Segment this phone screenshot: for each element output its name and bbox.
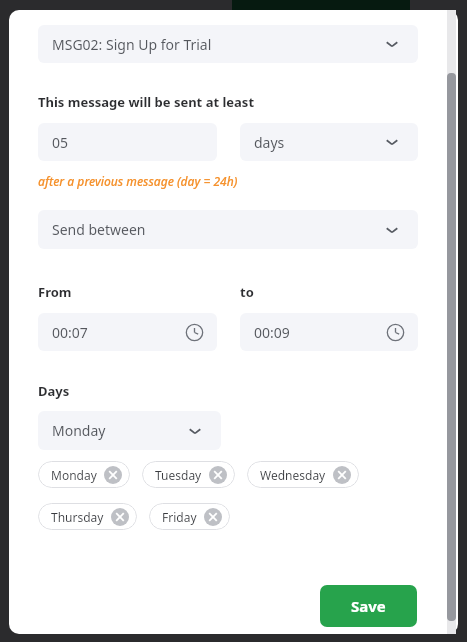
- button[interactable]: Tuesday: [142, 461, 235, 488]
- button[interactable]: Save: [320, 585, 417, 627]
- button[interactable]: Send between: [38, 210, 418, 249]
- staticText: 05: [52, 133, 69, 152]
- button[interactable]: Monday: [38, 411, 221, 450]
- button[interactable]: days: [240, 123, 418, 161]
- staticText: This message will be sent at least: [38, 93, 255, 111]
- staticText: after a previous message (day = 24h): [38, 173, 238, 189]
- button[interactable]: Thursday: [38, 503, 137, 530]
- staticText: to: [240, 283, 254, 301]
- button[interactable]: Wednesday: [247, 461, 359, 488]
- staticText: Friday: [162, 509, 197, 525]
- staticText: days: [254, 133, 285, 152]
- staticText: Wednesday: [260, 467, 326, 483]
- staticText: 00:09: [254, 323, 290, 342]
- other: Remove: [209, 466, 227, 484]
- other: Remove: [204, 508, 222, 526]
- button[interactable]: Monday: [38, 461, 130, 488]
- staticText: Save: [351, 596, 386, 616]
- staticText: Monday: [52, 421, 106, 440]
- button[interactable]: 05: [38, 123, 217, 161]
- staticText: Send between: [52, 220, 146, 239]
- other: Remove: [333, 466, 351, 484]
- staticText: MSG02: Sign Up for Trial: [52, 35, 212, 54]
- staticText: From: [38, 283, 72, 301]
- button[interactable]: MSG02: Sign Up for Trial: [38, 25, 418, 63]
- button[interactable]: Friday: [149, 503, 230, 530]
- staticText: Tuesday: [155, 467, 202, 483]
- button[interactable]: 00:07: [38, 313, 217, 351]
- staticText: 00:07: [52, 323, 88, 342]
- other: Remove: [104, 466, 122, 484]
- staticText: Days: [38, 382, 70, 400]
- staticText: Thursday: [51, 509, 104, 525]
- staticText: Monday: [51, 467, 97, 483]
- button[interactable]: 00:09: [240, 313, 418, 351]
- other: Remove: [111, 508, 129, 526]
